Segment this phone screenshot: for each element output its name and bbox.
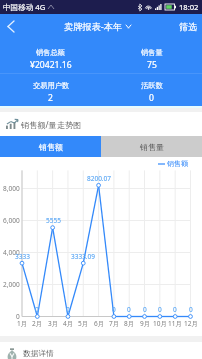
staticText: 0 [149, 92, 154, 104]
staticText: 销售额 [39, 142, 63, 152]
staticText: 数据详情 [23, 349, 54, 359]
button[interactable]: Back [0, 14, 22, 39]
staticText: 销售额/量走势图 [21, 119, 82, 130]
button[interactable]: 数据详情 [0, 342, 202, 359]
staticText: 8,000 [3, 184, 20, 193]
staticText: 3333 [15, 252, 30, 261]
staticText: 中国移动 4G [3, 2, 46, 12]
staticText: 0 [112, 305, 116, 314]
staticText: 0 [173, 305, 177, 314]
staticText: 2,000 [3, 280, 20, 289]
staticText: 销售额 [167, 159, 188, 168]
staticText: 10月 [153, 319, 167, 328]
staticText: 0 [16, 312, 20, 321]
staticText: 活跃数 [141, 81, 163, 90]
button[interactable]: 活跃数 [101, 74, 202, 106]
staticText: 0 [158, 305, 162, 314]
staticText: 0 [66, 305, 70, 314]
staticText: 6,000 [3, 216, 20, 225]
staticText: ¥20421.16 [30, 59, 72, 71]
staticText: 8月 [124, 319, 135, 328]
staticText: 8200.07 [87, 174, 112, 183]
staticText: 3333.09 [71, 252, 96, 261]
staticText: 75 [147, 59, 157, 71]
button[interactable]: 卖牌报表-本年 [0, 14, 202, 39]
staticText: 0 [35, 305, 39, 314]
staticText: 销售量 [140, 142, 164, 152]
staticText: 18:02 [179, 2, 199, 12]
staticText: 卖牌报表-本年 [64, 20, 123, 33]
staticText: 2月 [32, 319, 43, 328]
staticText: 9月 [140, 319, 151, 328]
staticText: 销售总额 [36, 48, 65, 57]
staticText: 交易用户数 [33, 81, 69, 90]
button[interactable]: 销售量 [101, 39, 202, 73]
staticText: 5月 [78, 319, 89, 328]
staticText: 12月 [184, 319, 198, 328]
staticText: 11月 [168, 319, 182, 328]
button[interactable]: 销售总额 [0, 39, 101, 73]
staticText: 0 [189, 305, 193, 314]
staticText: 3月 [48, 319, 59, 328]
staticText: 5555 [46, 216, 61, 225]
staticText: 4月 [63, 319, 74, 328]
button[interactable]: 销售量 [101, 136, 202, 157]
staticText: 0 [143, 305, 147, 314]
staticText: 0 [127, 305, 131, 314]
button[interactable]: 筛选 [171, 14, 202, 39]
staticText: 7月 [109, 319, 120, 328]
staticText: 6月 [94, 319, 105, 328]
staticText: 4,000 [3, 248, 20, 257]
staticText: 销售量 [141, 48, 163, 57]
staticText: 2 [48, 92, 53, 104]
button[interactable]: 交易用户数 [0, 74, 101, 106]
staticText: 1月 [17, 319, 28, 328]
button[interactable]: 销售额 [0, 136, 101, 157]
staticText: 筛选 [179, 21, 197, 32]
